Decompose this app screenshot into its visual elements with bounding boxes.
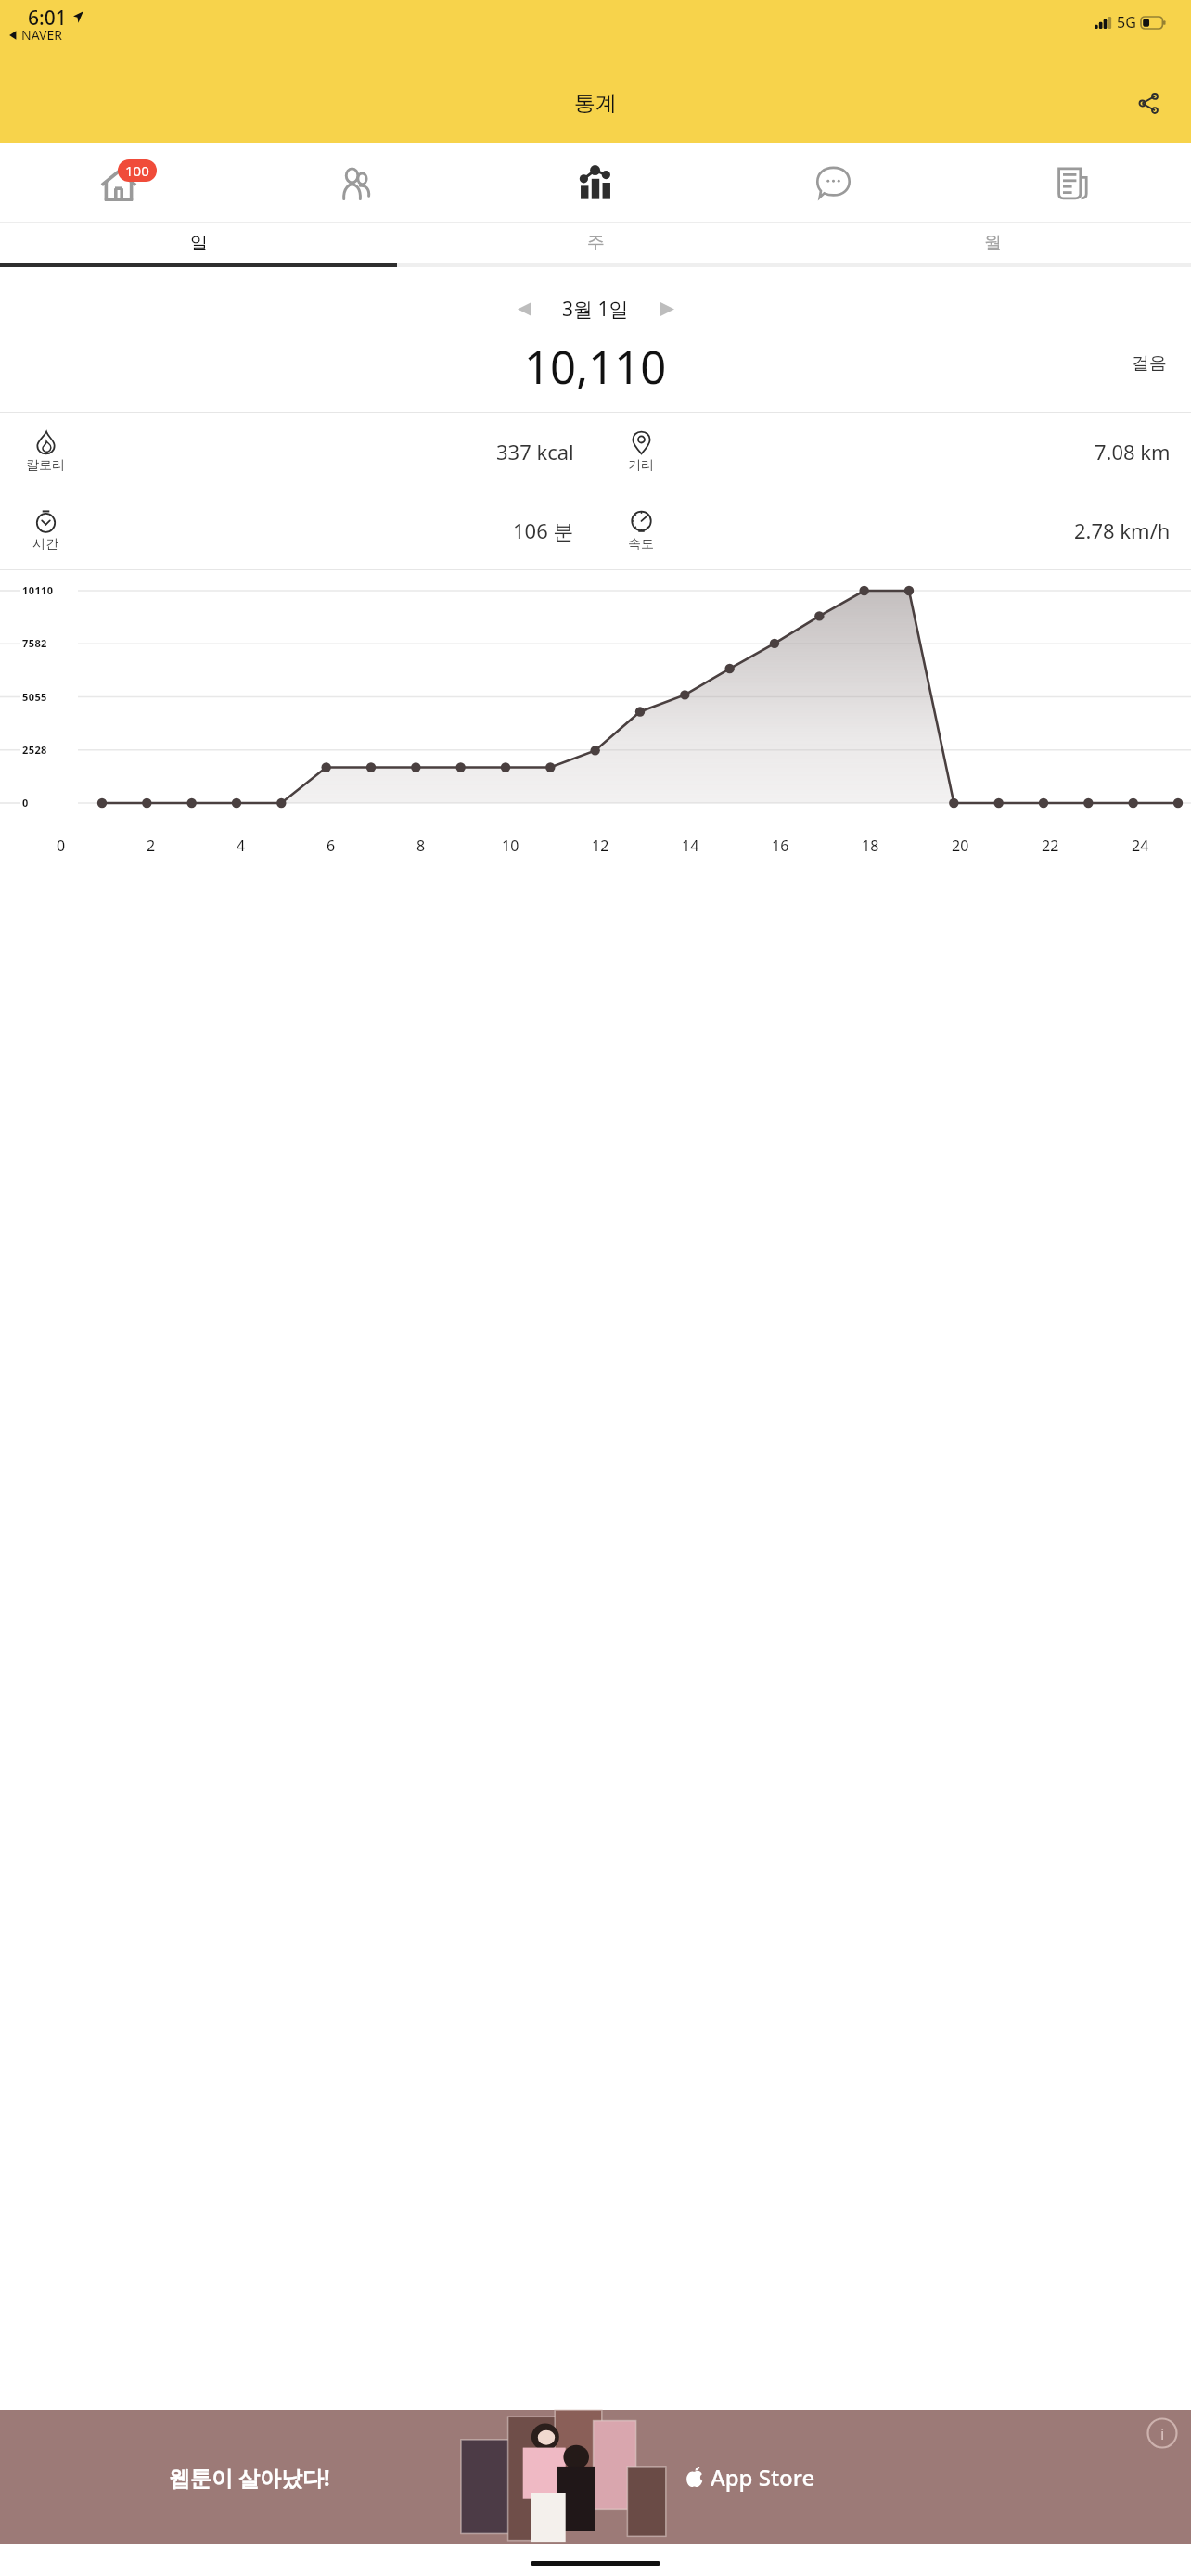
- button[interactable]: 공유: [1126, 81, 1171, 125]
- staticText: 3월 1일: [562, 296, 629, 323]
- staticText: 16: [772, 835, 789, 856]
- staticText: 337 kcal: [496, 438, 574, 465]
- staticText: 18: [862, 835, 879, 856]
- staticText: 12: [592, 835, 609, 856]
- staticText: 100: [125, 161, 149, 180]
- staticText: 20: [952, 835, 969, 856]
- staticText: 24: [1132, 835, 1149, 856]
- button[interactable]: 친구: [237, 143, 476, 222]
- staticText: 일: [190, 232, 208, 254]
- staticText: 거리: [628, 457, 654, 474]
- button[interactable]: 칼로리: [0, 413, 595, 491]
- staticText: App Store: [711, 2462, 815, 2493]
- staticText: 7582: [22, 636, 47, 650]
- staticText: 웹툰이 살아났다!: [169, 2463, 330, 2492]
- staticText: 8: [416, 835, 426, 856]
- staticText: 월: [984, 232, 1002, 254]
- staticText: 주: [587, 232, 605, 254]
- button[interactable]: 일: [0, 223, 397, 263]
- staticText: 통계: [574, 90, 617, 117]
- staticText: 5G: [1117, 12, 1136, 32]
- staticText: 걸음: [1132, 352, 1167, 375]
- button[interactable]: 채팅: [714, 143, 953, 222]
- staticText: 시간: [32, 536, 58, 553]
- staticText: 2528: [22, 743, 47, 757]
- button[interactable]: 통계: [476, 143, 714, 222]
- staticText: 10: [502, 835, 519, 856]
- button[interactable]: 주: [397, 223, 794, 263]
- staticText: 6: [327, 835, 336, 856]
- staticText: NAVER: [21, 26, 62, 44]
- staticText: 2: [147, 835, 156, 856]
- button[interactable]: 속도: [595, 491, 1191, 569]
- button[interactable]: 뉴스: [953, 143, 1191, 222]
- staticText: 10,110: [524, 336, 667, 391]
- staticText: 6:01: [28, 5, 67, 32]
- button[interactable]: 월: [794, 223, 1191, 263]
- button[interactable]: 시간: [0, 491, 595, 569]
- staticText: i: [1160, 2423, 1165, 2444]
- button[interactable]: 광고 정보: [1146, 2417, 1178, 2449]
- staticText: 2.78 km/h: [1074, 516, 1171, 544]
- button[interactable]: 웹툰이 살아났다!: [0, 2410, 1191, 2544]
- staticText: 5055: [22, 690, 47, 704]
- staticText: 4: [237, 835, 246, 856]
- staticText: 0: [22, 796, 29, 810]
- staticText: 14: [682, 835, 699, 856]
- button[interactable]: 이전 날짜: [503, 287, 545, 330]
- staticText: 106 분: [513, 516, 574, 544]
- staticText: 10110: [22, 583, 54, 597]
- staticText: 속도: [628, 536, 654, 553]
- button[interactable]: 거리: [595, 413, 1191, 491]
- staticText: 7.08 km: [1095, 438, 1171, 465]
- staticText: 22: [1042, 835, 1059, 856]
- button[interactable]: 다음 날짜: [646, 287, 688, 330]
- staticText: 0: [57, 835, 66, 856]
- button[interactable]: 홈: [0, 143, 237, 222]
- staticText: 칼로리: [26, 457, 65, 474]
